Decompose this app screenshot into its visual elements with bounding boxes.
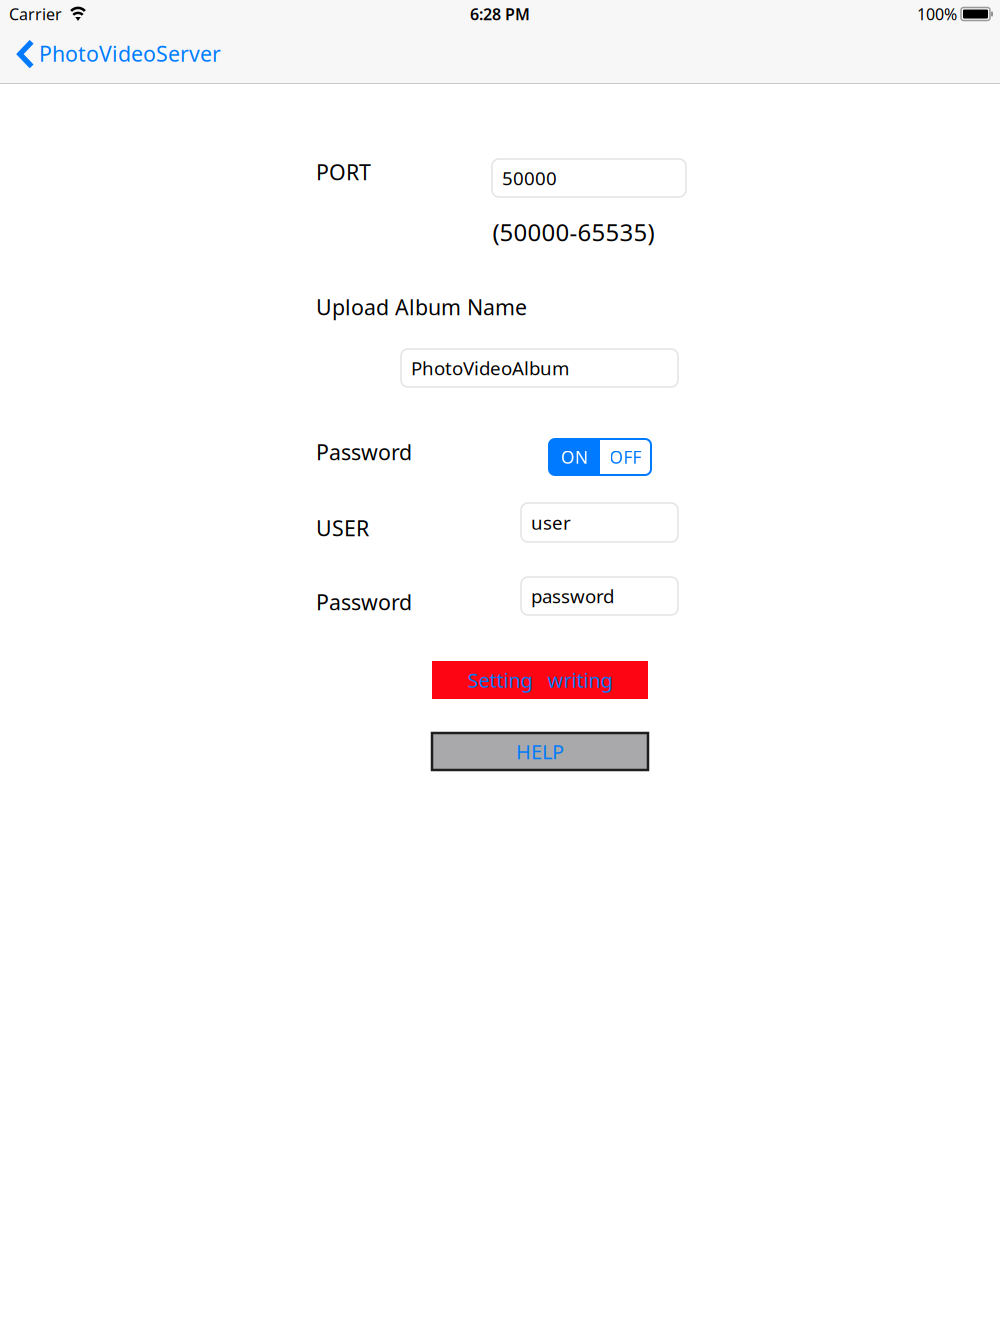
button[interactable]: Back to PhotoVideoServer xyxy=(0,26,233,85)
button[interactable]: OFF xyxy=(600,439,651,475)
button[interactable]: Setting writing xyxy=(432,661,648,699)
staticText: Carrier xyxy=(9,3,62,25)
staticText: Password xyxy=(316,438,412,466)
staticText: 6:28 PM xyxy=(470,3,530,25)
staticText: HELP xyxy=(516,738,564,765)
button[interactable]: user xyxy=(521,503,678,542)
staticText: ON xyxy=(561,445,588,468)
button[interactable]: 50000 xyxy=(492,159,686,197)
button[interactable]: ON xyxy=(549,439,600,475)
staticText: password xyxy=(531,584,614,608)
staticText: PhotoVideoServer xyxy=(39,39,221,68)
staticText: (50000-65535) xyxy=(492,216,654,248)
staticText: PhotoVideoAlbum xyxy=(411,356,569,380)
staticText: user xyxy=(531,510,571,535)
button[interactable]: HELP xyxy=(432,733,648,770)
staticText: Upload Album Name xyxy=(316,293,527,321)
staticText: USER xyxy=(316,514,369,542)
staticText: Setting writing xyxy=(467,667,612,693)
staticText: 50000 xyxy=(502,166,557,190)
button[interactable]: PhotoVideoAlbum xyxy=(401,349,678,387)
staticText: 100% xyxy=(917,3,957,25)
staticText: OFF xyxy=(609,445,641,468)
button[interactable]: password xyxy=(521,577,678,615)
staticText: Password xyxy=(316,588,412,616)
staticText: PORT xyxy=(316,158,371,186)
